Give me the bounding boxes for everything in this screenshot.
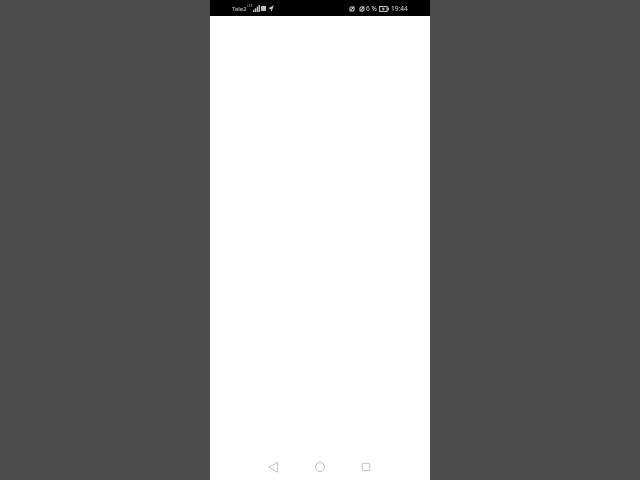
button[interactable]: Home	[306, 453, 333, 480]
staticText: 19:44	[391, 4, 408, 13]
staticText: Tele2	[232, 5, 247, 13]
button[interactable]: Recent apps	[352, 453, 379, 480]
staticText: 6 %	[366, 4, 377, 13]
staticText: LTE	[247, 3, 253, 8]
button[interactable]: Back	[260, 453, 287, 480]
